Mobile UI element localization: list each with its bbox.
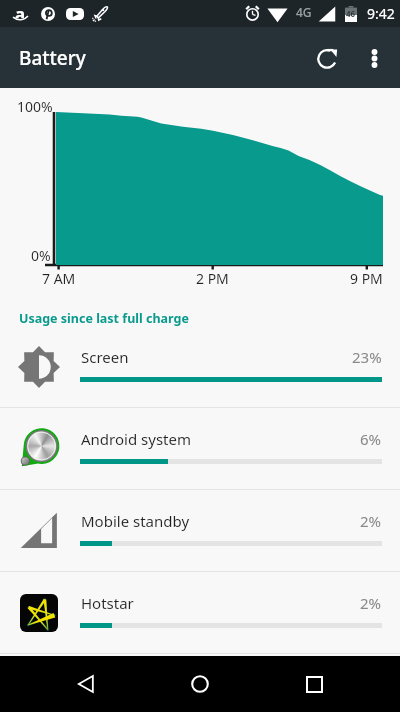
button[interactable]: Home [172,656,228,712]
staticText: 2% [360,593,382,613]
staticText: Battery [19,45,86,71]
staticText: a [15,3,26,18]
staticText: 9:42 [367,4,395,23]
staticText: Android system [81,429,361,449]
button[interactable]: Hotstar [0,572,400,653]
staticText: Usage since last full charge [19,310,189,327]
button[interactable]: Mobile standby [0,490,400,571]
staticText: 6% [360,429,382,449]
staticText: 7 AM [42,269,76,288]
staticText: 4G [296,4,312,20]
staticText: 2 PM [196,269,229,288]
button[interactable]: Refresh [304,34,352,82]
staticText: 9 PM [350,269,383,288]
staticText: 0% [31,246,51,265]
staticText: Hotstar [81,593,361,613]
staticText: Mobile standby [81,511,361,531]
button[interactable]: Recent apps [286,656,342,712]
staticText: Screen [81,347,353,367]
button[interactable]: Android system [0,408,400,489]
button[interactable]: Back [58,656,114,712]
staticText: 2% [360,511,382,531]
button[interactable]: Screen [0,326,400,407]
staticText: 23% [352,347,382,367]
button[interactable]: More options [352,36,396,80]
staticText: 100% [17,97,53,116]
staticText: 46 [346,8,356,19]
